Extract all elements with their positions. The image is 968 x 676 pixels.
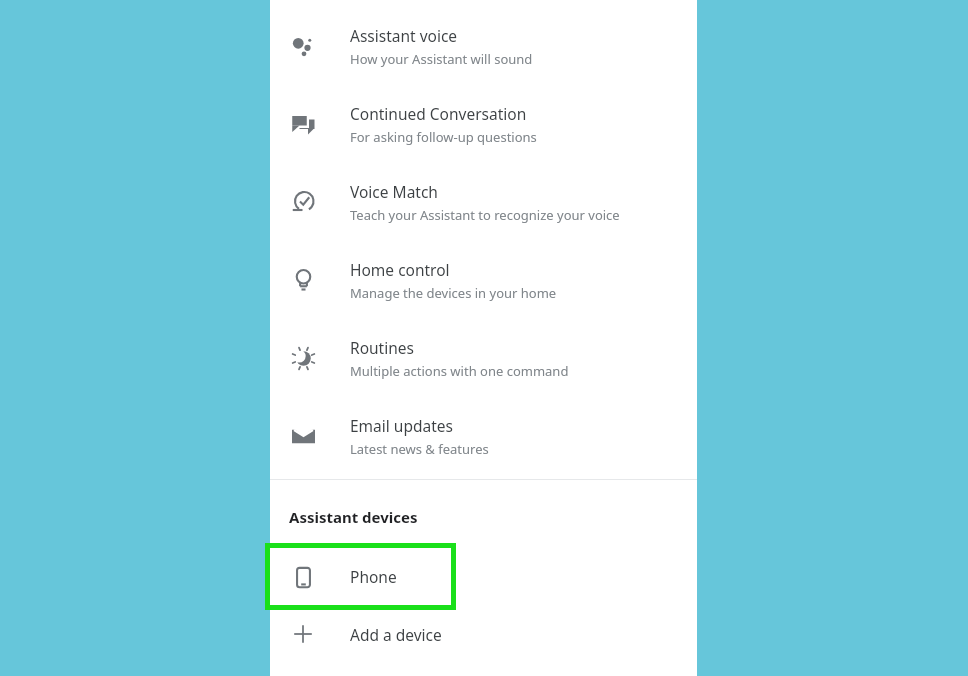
button[interactable]: Home control <box>270 241 697 319</box>
button[interactable]: Routines <box>270 319 697 397</box>
staticText: Assistant voice <box>350 25 458 46</box>
button[interactable]: Add a device <box>270 610 697 658</box>
staticText: How your Assistant will sound <box>350 50 533 68</box>
staticText: Home control <box>350 259 450 280</box>
staticText: Manage the devices in your home <box>350 284 557 302</box>
button[interactable]: Phone <box>270 548 451 605</box>
staticText: Routines <box>350 337 414 358</box>
button[interactable]: Assistant voice <box>270 7 697 85</box>
staticText: Add a device <box>350 624 442 645</box>
button[interactable]: Voice Match <box>270 163 697 241</box>
button[interactable]: Email updates <box>270 397 697 475</box>
staticText: Assistant devices <box>289 507 418 527</box>
staticText: Teach your Assistant to recognize your v… <box>350 206 620 224</box>
staticText: For asking follow-up questions <box>350 128 537 146</box>
staticText: Continued Conversation <box>350 103 527 124</box>
staticText: Phone <box>350 566 397 587</box>
staticText: Latest news & features <box>350 440 489 458</box>
staticText: Voice Match <box>350 181 438 202</box>
button[interactable]: Continued Conversation <box>270 85 697 163</box>
staticText: Multiple actions with one command <box>350 362 569 380</box>
staticText: Email updates <box>350 415 453 436</box>
